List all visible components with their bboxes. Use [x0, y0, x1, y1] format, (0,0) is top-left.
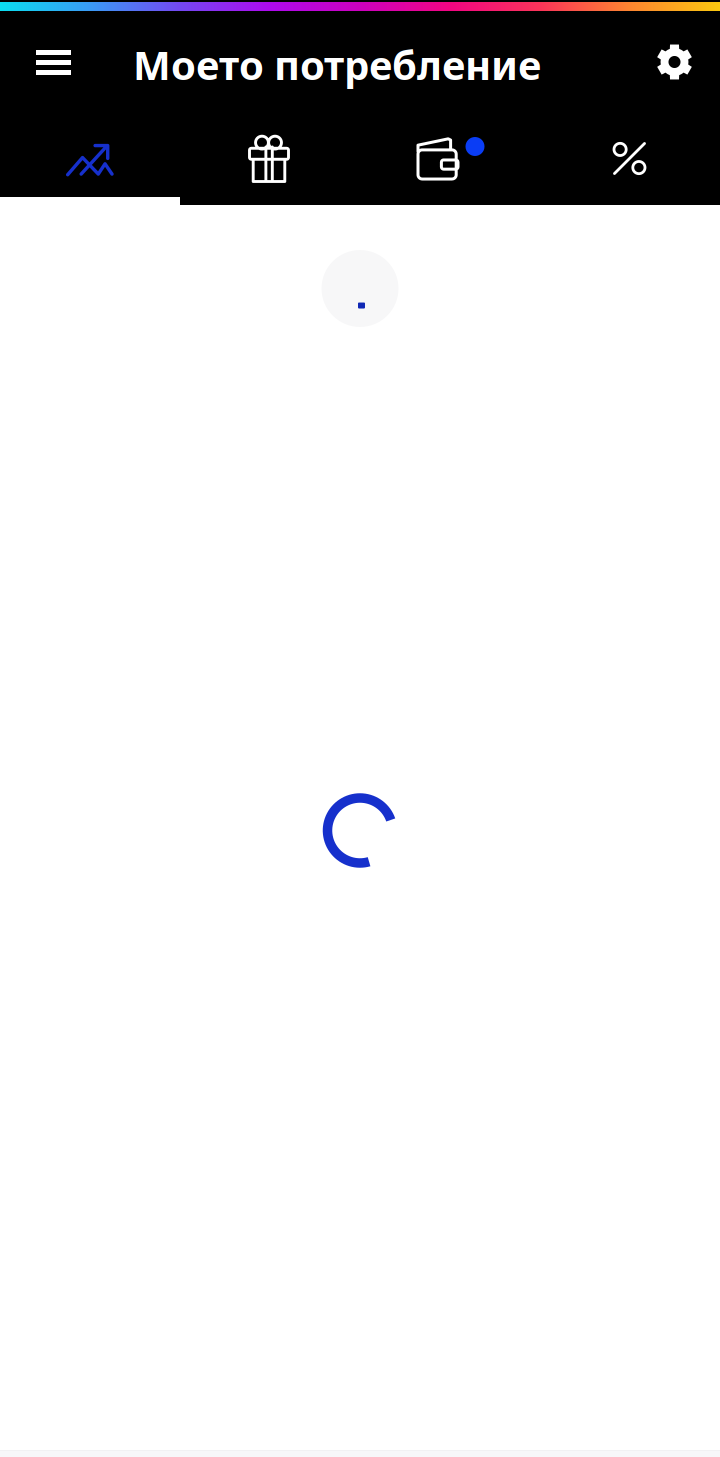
button[interactable]: Promotions — [540, 114, 720, 197]
button[interactable]: Settings — [633, 21, 720, 103]
button[interactable]: Consumption — [0, 114, 180, 197]
button[interactable]: Menu — [0, 22, 95, 103]
button[interactable]: Offers — [180, 114, 360, 197]
button[interactable]: Wallet — [360, 114, 540, 197]
staticText: Моето потребление — [133, 38, 541, 91]
